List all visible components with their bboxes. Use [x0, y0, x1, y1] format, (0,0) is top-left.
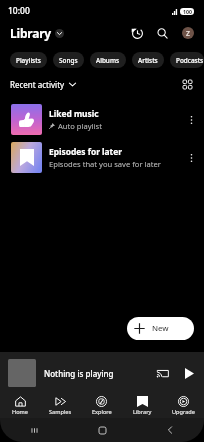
button[interactable]: More options: [182, 111, 200, 129]
button[interactable]: Home: [0, 394, 40, 418]
button[interactable]: Library: [122, 394, 163, 418]
button[interactable]: Search: [151, 22, 173, 44]
staticText: 100: [183, 8, 192, 15]
button[interactable]: Account: [182, 27, 194, 39]
staticText: 10:00: [8, 5, 30, 17]
staticText: Liked music: [49, 108, 99, 119]
button[interactable]: Recents: [0, 418, 68, 442]
staticText: Episodes that you save for later: [49, 159, 161, 169]
button[interactable]: Recent activity: [10, 79, 76, 90]
button[interactable]: Samples: [40, 394, 81, 418]
staticText: Recent activity: [10, 79, 65, 90]
staticText: Upgrade: [172, 408, 195, 416]
staticText: Z: [186, 29, 190, 38]
staticText: Library: [133, 408, 152, 416]
staticText: Episodes for later: [49, 146, 123, 157]
staticText: Playlists: [16, 56, 41, 65]
button[interactable]: Artists: [132, 52, 164, 68]
staticText: Songs: [59, 56, 78, 65]
button[interactable]: Liked music: [0, 104, 204, 135]
button[interactable]: Explore: [81, 394, 122, 418]
staticText: New: [152, 323, 169, 334]
staticText: Home: [12, 408, 28, 416]
staticText: Samples: [49, 408, 72, 416]
staticText: Library: [10, 25, 52, 41]
button[interactable]: Songs: [53, 52, 84, 68]
button[interactable]: Home: [68, 418, 136, 442]
button[interactable]: Episodes for later: [0, 142, 204, 173]
button[interactable]: Albums: [90, 52, 126, 68]
button[interactable]: New: [127, 317, 194, 340]
button[interactable]: History: [126, 22, 148, 44]
button[interactable]: Cast: [155, 365, 169, 381]
staticText: Auto playlist: [58, 121, 102, 131]
button[interactable]: More options: [182, 149, 200, 167]
button[interactable]: Podcasts: [170, 52, 204, 68]
button[interactable]: Nothing is playing: [0, 352, 204, 394]
button[interactable]: Grid view: [180, 77, 194, 91]
button[interactable]: Playlists: [10, 52, 47, 68]
staticText: Nothing is playing: [44, 368, 155, 379]
staticText: Artists: [138, 56, 158, 65]
button[interactable]: Library: [10, 25, 64, 41]
button[interactable]: Upgrade: [163, 394, 204, 418]
staticText: Podcasts: [176, 56, 198, 65]
staticText: Albums: [96, 56, 120, 65]
staticText: Explore: [92, 408, 112, 416]
button[interactable]: Back: [136, 418, 204, 442]
button[interactable]: Play: [183, 365, 196, 381]
